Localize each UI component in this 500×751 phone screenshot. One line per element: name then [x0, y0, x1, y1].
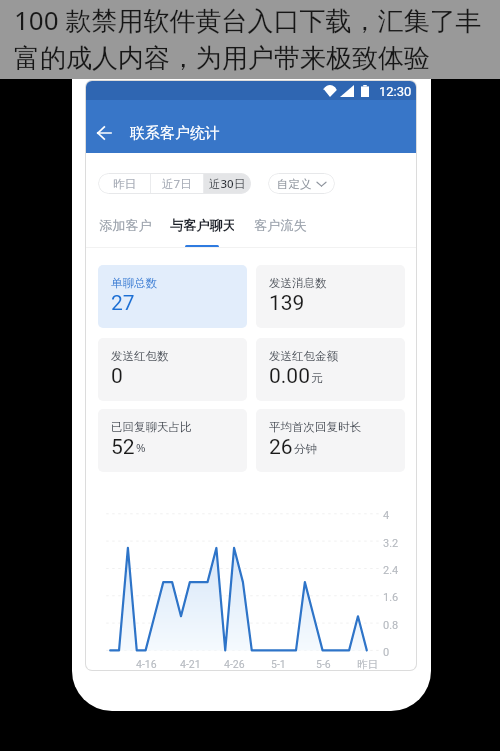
staticText: 0: [111, 364, 123, 389]
staticText: %: [136, 440, 146, 456]
staticText: 与客户聊天: [170, 217, 234, 234]
staticText: 已回复聊天占比: [111, 420, 192, 434]
staticText: 昨日: [357, 658, 378, 670]
staticText: 5-1: [271, 658, 286, 670]
staticText: 100 款禁用软件黄台入口下载，汇集了丰富的成人内容，为用户带来极致体验: [14, 2, 494, 74]
button[interactable]: 单聊总数: [98, 265, 247, 328]
staticText: 0.8: [383, 619, 399, 632]
staticText: 添加客户: [99, 217, 151, 234]
button[interactable]: 平均首次回复时长: [256, 409, 405, 472]
staticText: 发送红包金额: [269, 349, 338, 363]
button[interactable]: 与客户聊天: [170, 217, 234, 234]
staticText: 发送消息数: [269, 276, 327, 290]
staticText: 分钟: [294, 442, 317, 456]
button[interactable]: 自定义: [268, 173, 335, 194]
button[interactable]: 发送消息数: [256, 265, 405, 328]
staticText: 发送红包数: [111, 349, 169, 363]
staticText: 联系客户统计: [130, 124, 220, 143]
staticText: 自定义: [277, 177, 312, 191]
button[interactable]: 返回: [93, 122, 114, 143]
staticText: 1.6: [383, 591, 399, 604]
staticText: 27: [111, 291, 135, 316]
staticText: 12:30: [379, 84, 412, 99]
button[interactable]: 客户流失: [254, 217, 307, 234]
staticText: 26: [269, 435, 293, 460]
button[interactable]: 已回复聊天占比: [98, 409, 247, 472]
button[interactable]: 发送红包数: [98, 338, 247, 401]
staticText: 52: [111, 435, 135, 460]
staticText: 4-21: [180, 658, 201, 670]
staticText: 0: [383, 646, 390, 659]
button[interactable]: 发送红包金额: [256, 338, 405, 401]
staticText: 3.2: [383, 537, 399, 550]
staticText: 139: [269, 291, 305, 316]
staticText: 昨日: [113, 177, 136, 191]
staticText: 4-26: [224, 658, 245, 670]
staticText: 近30日: [209, 176, 246, 192]
staticText: 平均首次回复时长: [269, 420, 361, 434]
staticText: 4: [383, 509, 390, 522]
staticText: 元: [311, 371, 323, 385]
button[interactable]: 近7日: [151, 173, 203, 194]
staticText: 0.00: [269, 364, 310, 389]
staticText: 单聊总数: [111, 276, 157, 290]
button[interactable]: 近30日: [204, 173, 251, 194]
staticText: 客户流失: [254, 217, 307, 234]
staticText: 近7日: [162, 176, 192, 192]
staticText: 2.4: [383, 564, 399, 577]
button[interactable]: 添加客户: [99, 217, 151, 234]
staticText: 4-16: [136, 658, 157, 670]
button[interactable]: 昨日: [98, 173, 150, 194]
staticText: 5-6: [316, 658, 331, 670]
